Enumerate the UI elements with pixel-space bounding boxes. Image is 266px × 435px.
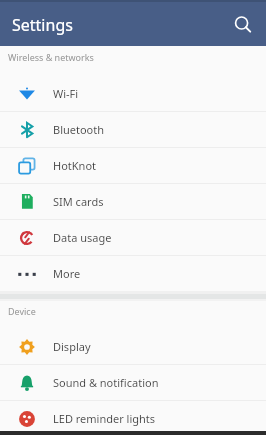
staticText: Bluetooth — [53, 122, 105, 137]
staticText: SIM cards — [53, 194, 104, 209]
staticText: Data usage — [53, 230, 112, 245]
staticText: Device — [8, 305, 36, 317]
button[interactable]: SIM cards — [0, 184, 266, 219]
button[interactable]: Wi-Fi — [0, 76, 266, 111]
staticText: HotKnot — [53, 158, 97, 173]
staticText: Wireless & networks — [8, 51, 94, 63]
staticText: More — [53, 266, 81, 281]
staticText: Sound & notification — [53, 375, 159, 390]
staticText: Wi-Fi — [53, 86, 79, 101]
button[interactable]: Data usage — [0, 220, 266, 255]
button[interactable]: Bluetooth — [0, 112, 266, 147]
staticText: Display — [53, 339, 91, 354]
button[interactable]: Search — [226, 8, 260, 42]
button[interactable]: Display — [0, 329, 266, 364]
staticText: LED reminder lights — [53, 411, 156, 426]
button[interactable]: HotKnot — [0, 148, 266, 183]
button[interactable]: LED reminder lights — [0, 401, 266, 431]
button[interactable]: Sound & notification — [0, 365, 266, 400]
button[interactable]: More — [0, 256, 266, 291]
staticText: Settings — [12, 14, 73, 36]
